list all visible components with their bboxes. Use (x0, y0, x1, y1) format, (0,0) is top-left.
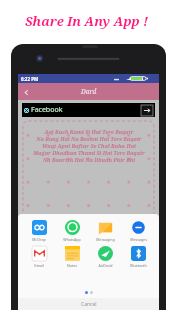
staticText: Gmail (34, 263, 44, 268)
staticText: Facebook (31, 105, 63, 115)
button[interactable]: Messaging (90, 220, 120, 242)
staticText: Mi Drop (32, 237, 46, 242)
staticText: Bluetooth (130, 263, 147, 268)
button[interactable]: Facebook (22, 103, 155, 117)
staticText: Dard (81, 87, 97, 96)
button[interactable]: AirDroid (90, 246, 120, 268)
staticText: 6:22 PM (21, 76, 39, 82)
button[interactable]: Back (18, 84, 34, 100)
staticText: Cancel (81, 301, 97, 308)
button[interactable]: Mi Drop (24, 220, 54, 242)
button[interactable]: Cancel (18, 298, 159, 310)
button[interactable]: Messages (123, 220, 153, 242)
button[interactable]: Bluetooth (123, 246, 153, 268)
staticText: AirDroid (98, 263, 113, 268)
staticText: WhatsApp (63, 237, 81, 242)
staticText: Share In Any App ! (25, 12, 149, 30)
button[interactable]: Send (141, 105, 153, 116)
button[interactable]: WhatsApp (57, 220, 87, 242)
staticText: Notes (67, 263, 77, 268)
staticText: Messaging (96, 237, 115, 242)
button[interactable]: Gmail (24, 246, 54, 268)
button[interactable]: Notes (57, 246, 87, 268)
staticText: Aaj Kuch Kami Si Hai Tere Baqair Na Rang… (33, 128, 145, 163)
staticText: Messages (130, 237, 147, 242)
